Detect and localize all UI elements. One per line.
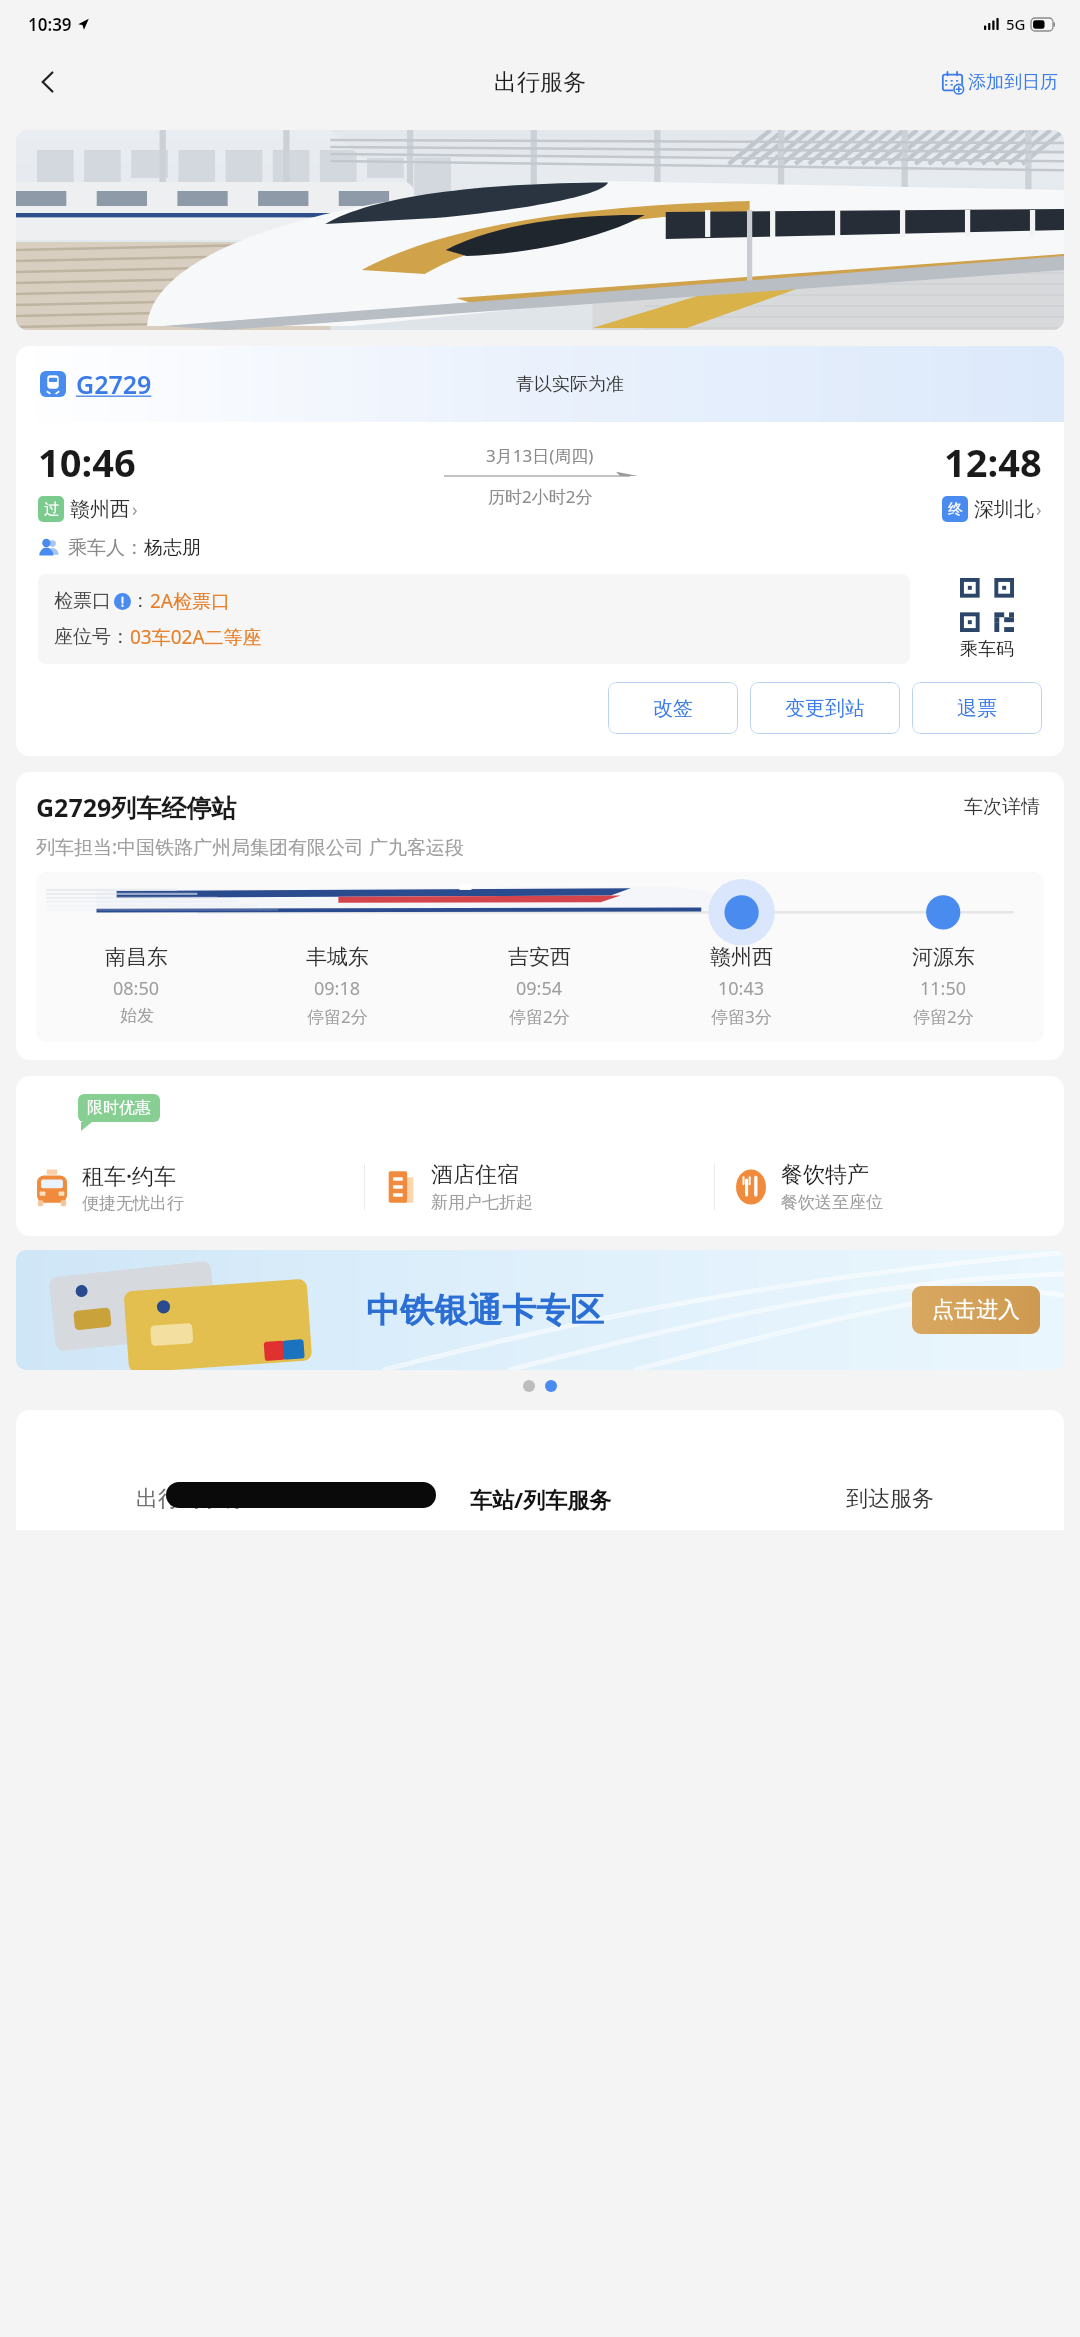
staticText: 便捷无忧出行: [82, 1193, 184, 1214]
button[interactable]: 出行前服务: [16, 1485, 366, 1513]
staticText: 添加到日历: [968, 71, 1058, 94]
staticText: 停留2分: [913, 1005, 974, 1028]
staticText: G2729: [76, 367, 152, 401]
staticText: 09:18: [314, 976, 361, 1001]
button[interactable]: 吉安西: [438, 944, 640, 1028]
staticText: ›: [132, 497, 138, 522]
staticText: 12:48: [944, 436, 1042, 488]
staticText: 乘车人：: [68, 536, 144, 560]
staticText: 杨志朋: [144, 536, 201, 560]
staticText: 点击进入: [932, 1296, 1020, 1324]
staticText: 吉安西: [508, 944, 571, 970]
staticText: 到达服务: [846, 1485, 934, 1513]
staticText: 始发: [120, 1005, 154, 1026]
button[interactable]: 租车·约车: [16, 1160, 364, 1214]
staticText: 终: [948, 500, 963, 519]
staticText: 10:39: [28, 13, 72, 36]
staticText: 历时2小时2分: [488, 485, 593, 508]
staticText: ：: [131, 589, 150, 613]
staticText: 过: [44, 500, 59, 519]
staticText: 列车担当:中国铁路广州局集团有限公司 广九客运段: [36, 834, 465, 860]
staticText: 11:50: [920, 976, 967, 1001]
staticText: 餐饮送至座位: [781, 1192, 883, 1213]
staticText: 2A检票口: [150, 588, 231, 614]
staticText: 座位号：: [54, 625, 130, 649]
button[interactable]: 变更到站: [750, 682, 900, 734]
staticText: 10:46: [38, 436, 136, 488]
staticText: 5G: [1006, 14, 1026, 34]
staticText: 租车·约车: [82, 1160, 177, 1190]
staticText: 变更到站: [785, 696, 865, 721]
staticText: 08:50: [113, 976, 160, 1001]
staticText: 车次详情: [964, 795, 1040, 819]
staticText: 检票口: [54, 589, 111, 613]
staticText: 新用户七折起: [431, 1192, 533, 1213]
staticText: 赣州西: [710, 944, 773, 970]
staticText: 3月13日(周四): [486, 444, 594, 467]
staticText: 改签: [653, 696, 693, 721]
staticText: ›: [1036, 497, 1042, 522]
button[interactable]: 车站/列车服务: [366, 1484, 715, 1514]
staticText: 09:54: [516, 976, 563, 1001]
staticText: 限时优惠: [87, 1098, 151, 1118]
button[interactable]: 赣州西: [640, 944, 842, 1028]
button[interactable]: 退票: [912, 682, 1042, 734]
button[interactable]: 乘车码: [932, 578, 1042, 661]
button[interactable]: 南昌东: [36, 944, 237, 1026]
staticText: 深圳北: [974, 497, 1034, 522]
button[interactable]: G2729: [40, 367, 152, 401]
button[interactable]: 到达服务: [715, 1485, 1064, 1513]
staticText: 出行前服务: [136, 1485, 246, 1513]
staticText: 停留2分: [509, 1005, 570, 1028]
button[interactable]: 车次详情: [960, 791, 1044, 823]
button[interactable]: 点击进入: [932, 1296, 1020, 1324]
button[interactable]: 中铁银通卡专区: [16, 1250, 1064, 1370]
staticText: G2729列车经停站: [36, 790, 237, 824]
staticText: 南昌东: [105, 944, 168, 970]
staticText: 丰城东: [306, 944, 369, 970]
staticText: 河源东: [912, 944, 975, 970]
button[interactable]: [16, 130, 1064, 330]
staticText: 车站/列车服务: [470, 1484, 612, 1514]
staticText: 中铁银通卡专区: [366, 1289, 604, 1332]
button[interactable]: 丰城东: [237, 944, 438, 1028]
staticText: 赣州西: [70, 497, 130, 522]
button[interactable]: 酒店住宿: [365, 1161, 714, 1213]
staticText: 乘车码: [960, 638, 1014, 661]
button[interactable]: 改签: [608, 682, 738, 734]
staticText: 03车02A二等座: [130, 624, 262, 650]
button[interactable]: 河源东: [842, 944, 1044, 1028]
staticText: 出行服务: [494, 68, 586, 97]
button[interactable]: 餐饮特产: [715, 1161, 1064, 1213]
button[interactable]: Back: [22, 56, 74, 108]
staticText: 停留2分: [307, 1005, 368, 1028]
staticText: 10:43: [718, 976, 765, 1001]
staticText: 退票: [957, 696, 997, 721]
staticText: 酒店住宿: [431, 1161, 519, 1189]
staticText: 青以实际为准: [516, 373, 624, 396]
button[interactable]: 添加到日历: [936, 63, 1064, 102]
staticText: 餐饮特产: [781, 1161, 869, 1189]
staticText: 停留3分: [711, 1005, 772, 1028]
